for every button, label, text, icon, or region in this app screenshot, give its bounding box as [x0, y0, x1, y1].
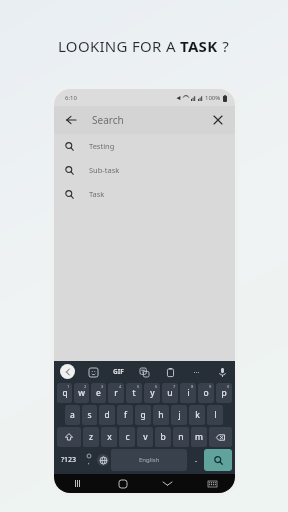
- staticText: 0: [227, 384, 230, 389]
- staticText: c: [125, 431, 130, 443]
- staticText: t: [132, 387, 136, 399]
- staticText: Task: [89, 189, 105, 199]
- staticText: Search: [92, 113, 124, 127]
- button[interactable]: u: [162, 383, 178, 403]
- staticText: ?: [218, 36, 230, 56]
- button[interactable]: v: [137, 427, 153, 447]
- staticText: Sub-task: [89, 165, 120, 175]
- button[interactable]: a: [65, 405, 80, 425]
- button[interactable]: Home: [100, 474, 145, 493]
- button[interactable]: q: [57, 383, 72, 403]
- button[interactable]: Translate: [137, 365, 151, 379]
- staticText: 5: [137, 384, 140, 389]
- staticText: 6:10: [65, 94, 77, 102]
- staticText: u: [167, 387, 173, 399]
- staticText: w: [78, 387, 85, 399]
- staticText: j: [178, 409, 181, 421]
- button[interactable]: g: [135, 405, 151, 425]
- button[interactable]: Backspace: [209, 427, 232, 447]
- staticText: m: [195, 431, 203, 443]
- button[interactable]: Shift: [57, 427, 81, 447]
- button[interactable]: Sub-task: [54, 158, 235, 182]
- staticText: .: [195, 455, 197, 465]
- button[interactable]: Clipboard: [163, 365, 177, 379]
- button[interactable]: h: [153, 405, 169, 425]
- staticText: v: [143, 431, 148, 443]
- button[interactable]: x: [101, 427, 117, 447]
- staticText: a: [70, 409, 75, 421]
- staticText: 3: [101, 384, 104, 389]
- staticText: g: [140, 409, 146, 421]
- staticText: z: [89, 431, 93, 443]
- button[interactable]: Stickers: [86, 365, 100, 379]
- button[interactable]: Search: [204, 449, 232, 471]
- button[interactable]: t: [126, 383, 142, 403]
- button[interactable]: Recents: [54, 474, 100, 493]
- button[interactable]: w: [74, 383, 89, 403]
- button[interactable]: s: [82, 405, 97, 425]
- staticText: 2: [84, 384, 87, 389]
- button[interactable]: Testing: [54, 134, 235, 158]
- button[interactable]: p: [216, 383, 232, 403]
- button[interactable]: o: [198, 383, 214, 403]
- button[interactable]: GIF: [111, 364, 126, 379]
- staticText: 8: [191, 384, 194, 389]
- staticText: TASK: [180, 36, 218, 56]
- staticText: q: [62, 387, 68, 399]
- button[interactable]: Back: [63, 112, 79, 128]
- button[interactable]: m: [191, 427, 207, 447]
- staticText: n: [178, 431, 184, 443]
- button[interactable]: z: [83, 427, 99, 447]
- button[interactable]: Emoji and comma: [82, 448, 95, 472]
- button[interactable]: e: [91, 383, 106, 403]
- button[interactable]: .: [188, 448, 203, 472]
- staticText: 100%: [205, 94, 221, 102]
- staticText: y: [150, 387, 155, 399]
- button[interactable]: Task: [54, 182, 235, 206]
- staticText: f: [124, 409, 127, 421]
- staticText: 6: [155, 384, 158, 389]
- staticText: 7: [173, 384, 176, 389]
- staticText: e: [96, 387, 101, 399]
- staticText: 9: [209, 384, 212, 389]
- staticText: b: [160, 431, 166, 443]
- button[interactable]: Voice input: [215, 365, 229, 379]
- button[interactable]: Clear: [210, 112, 226, 128]
- button[interactable]: Hide keyboard: [145, 474, 190, 493]
- staticText: l: [214, 409, 217, 421]
- staticText: 1: [67, 384, 70, 389]
- button[interactable]: Collapse toolbar: [60, 364, 75, 379]
- button[interactable]: Back: [54, 106, 235, 134]
- button[interactable]: l: [207, 405, 223, 425]
- button[interactable]: c: [119, 427, 135, 447]
- staticText: h: [158, 409, 164, 421]
- staticText: k: [195, 409, 200, 421]
- staticText: GIF: [113, 367, 124, 376]
- button[interactable]: English: [111, 449, 187, 471]
- staticText: ?123: [61, 455, 77, 465]
- button[interactable]: n: [173, 427, 189, 447]
- staticText: LOOKING FOR A: [58, 36, 180, 56]
- staticText: d: [104, 409, 110, 421]
- staticText: r: [114, 387, 118, 399]
- staticText: o: [203, 387, 209, 399]
- button[interactable]: Keyboard settings: [190, 474, 235, 493]
- button[interactable]: y: [144, 383, 160, 403]
- button[interactable]: j: [171, 405, 187, 425]
- button[interactable]: ?123: [57, 449, 81, 471]
- button[interactable]: r: [108, 383, 124, 403]
- button[interactable]: More options: [189, 365, 203, 379]
- button[interactable]: f: [117, 405, 133, 425]
- button[interactable]: i: [180, 383, 196, 403]
- staticText: x: [107, 431, 112, 443]
- staticText: ,: [88, 458, 90, 466]
- staticText: English: [139, 456, 160, 464]
- button[interactable]: d: [99, 405, 115, 425]
- staticText: Testing: [89, 141, 115, 151]
- staticText: p: [221, 387, 227, 399]
- button[interactable]: b: [155, 427, 171, 447]
- button[interactable]: k: [189, 405, 205, 425]
- staticText: s: [87, 409, 92, 421]
- button[interactable]: Change language: [95, 448, 110, 472]
- staticText: 4: [119, 384, 122, 389]
